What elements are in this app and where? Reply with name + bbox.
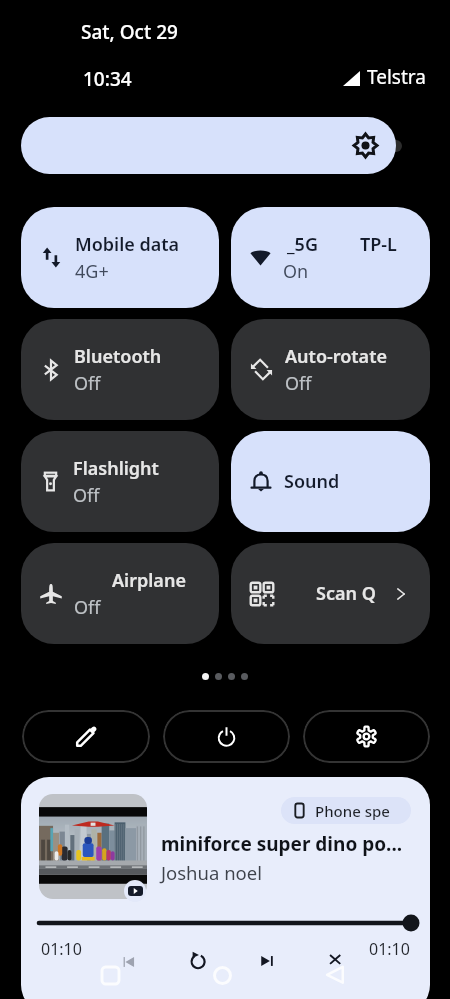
button[interactable]: Replay <box>188 951 209 972</box>
staticText: 01:10 <box>369 938 410 960</box>
button[interactable]: Edit <box>22 710 150 763</box>
button[interactable]: Flashlight <box>21 431 219 532</box>
button[interactable]: Next <box>258 953 276 970</box>
button[interactable]: Airplane <box>21 543 219 644</box>
staticText: Flashlight <box>73 456 159 481</box>
staticText: _5G <box>287 232 318 257</box>
staticText: TP-L <box>360 232 397 257</box>
other: Back <box>326 965 344 983</box>
button[interactable]: Auto-rotate <box>231 319 430 420</box>
staticText: 01:10 <box>41 938 82 960</box>
button[interactable]: Scan Q <box>231 543 430 644</box>
staticText: Off <box>285 371 312 396</box>
staticText: Sat, Oct 29 <box>81 19 178 45</box>
staticText: Auto-rotate <box>285 344 387 369</box>
staticText: Mobile data <box>75 232 180 257</box>
button[interactable]: Close <box>327 952 344 970</box>
staticText: Bluetooth <box>74 344 162 369</box>
staticText: miniforce super dino po... <box>161 831 403 857</box>
button[interactable]: Brightness <box>21 117 396 174</box>
staticText: Airplane <box>112 568 186 593</box>
staticText: Off <box>73 483 100 508</box>
staticText: On <box>283 259 309 284</box>
button[interactable]: Bluetooth <box>21 319 219 420</box>
button[interactable]: Settings <box>303 710 430 763</box>
other: Home <box>213 966 232 985</box>
staticText: Joshua noel <box>161 860 262 885</box>
button[interactable]: Previous <box>120 954 138 971</box>
staticText: 10:34 <box>83 66 132 92</box>
staticText: Scan Q <box>316 581 376 606</box>
staticText: Telstra <box>367 64 426 90</box>
staticText: Off <box>74 371 101 396</box>
staticText: Phone spe <box>315 801 390 821</box>
staticText: 4G+ <box>75 259 109 284</box>
button[interactable]: Phone spe <box>281 797 411 824</box>
staticText: Off <box>74 595 101 620</box>
button[interactable]: Power <box>163 710 290 763</box>
staticText: Sound <box>284 469 340 494</box>
button[interactable]: _5G <box>231 207 430 308</box>
button[interactable]: Mobile data <box>21 207 219 308</box>
button[interactable]: Sound <box>231 431 430 532</box>
other: Recents <box>102 967 119 984</box>
